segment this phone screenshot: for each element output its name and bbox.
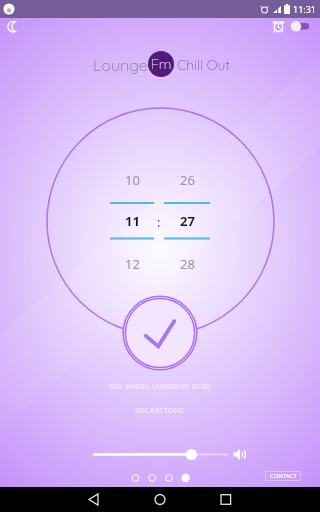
staticText: 11 xyxy=(125,212,140,230)
button[interactable]: 10 xyxy=(110,171,154,189)
staticText: Fm xyxy=(151,55,172,73)
button[interactable]: 26 xyxy=(164,171,210,189)
button[interactable]: BIG WHEEL (AMBIENT DUB) xyxy=(0,379,320,393)
button[interactable]: Alarm xyxy=(268,17,288,37)
staticText: 27 xyxy=(180,212,195,230)
staticText: 26 xyxy=(180,171,195,189)
button[interactable]: Lounge FM xyxy=(148,51,174,77)
staticText: Lounge xyxy=(93,55,148,75)
button[interactable]: Alarm toggle xyxy=(288,17,314,37)
staticText: Chill Out xyxy=(177,56,230,74)
staticText: : xyxy=(157,213,161,231)
button[interactable]: SOLARSTONE xyxy=(0,403,320,417)
button[interactable]: 12 xyxy=(110,255,154,273)
staticText: CONTACT xyxy=(270,472,297,480)
button[interactable]: Volume xyxy=(231,446,248,463)
staticText: 12 xyxy=(125,255,140,273)
button[interactable]: Sleep timer xyxy=(3,17,23,37)
button[interactable]: CONTACT xyxy=(265,471,301,481)
staticText: 11:31 xyxy=(293,3,317,15)
staticText: BIG WHEEL (AMBIENT DUB) xyxy=(109,381,211,391)
staticText: SOLARSTONE xyxy=(135,405,185,415)
button[interactable]: 11 xyxy=(110,212,154,230)
staticText: 28 xyxy=(180,255,195,273)
staticText: 10 xyxy=(125,171,140,189)
button[interactable]: 27 xyxy=(164,212,210,230)
button[interactable]: Confirm xyxy=(121,294,199,372)
button[interactable]: 28 xyxy=(164,255,210,273)
